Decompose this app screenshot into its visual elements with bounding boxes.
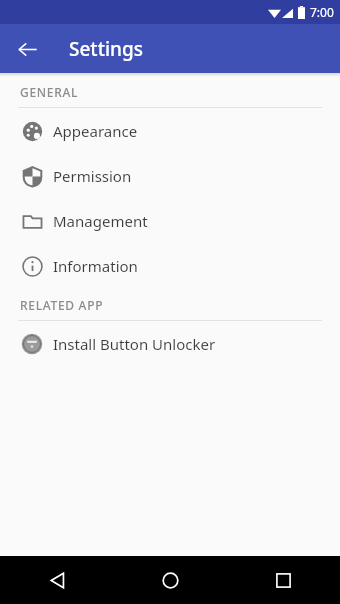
staticText: Settings — [69, 36, 143, 62]
staticText: RELATED APP — [20, 297, 104, 313]
staticText: 7:00 — [310, 4, 334, 20]
button[interactable]: Home — [114, 556, 227, 604]
staticText: Appearance — [53, 121, 138, 141]
button[interactable]: Information — [0, 243, 340, 288]
button[interactable]: Management — [0, 198, 340, 243]
button[interactable]: Install Button Unlocker — [0, 321, 340, 366]
staticText: Management — [53, 211, 148, 231]
staticText: GENERAL — [20, 84, 79, 100]
button[interactable]: Back — [0, 556, 114, 604]
staticText: Information — [53, 256, 138, 276]
staticText: Permission — [53, 166, 132, 186]
button[interactable]: Back — [9, 31, 45, 67]
button[interactable]: Permission — [0, 153, 340, 198]
staticText: Install Button Unlocker — [53, 334, 216, 354]
button[interactable]: Appearance — [0, 108, 340, 153]
button[interactable]: Recent apps — [227, 556, 340, 604]
